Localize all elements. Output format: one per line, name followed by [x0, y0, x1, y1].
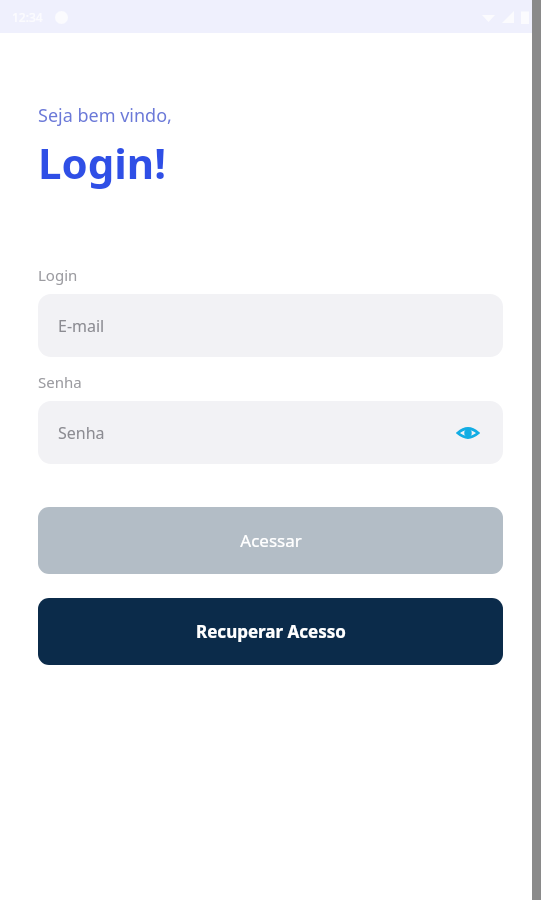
staticText: Acessar	[240, 529, 302, 552]
staticText: Login!	[38, 134, 166, 191]
staticText: Recuperar Acesso	[196, 620, 346, 643]
staticText: Senha	[38, 372, 82, 392]
staticText: 12:34	[12, 9, 43, 25]
button[interactable]: Recuperar Acesso	[38, 598, 503, 665]
button[interactable]: E-mail	[38, 294, 503, 357]
button[interactable]: Mostrar senha	[453, 418, 483, 448]
button[interactable]: Acessar	[38, 507, 503, 574]
staticText: Senha	[58, 422, 105, 444]
staticText: Seja bem vindo,	[38, 103, 172, 128]
staticText: E-mail	[58, 315, 105, 337]
staticText: Login	[38, 265, 78, 285]
button[interactable]: Senha	[38, 401, 503, 464]
